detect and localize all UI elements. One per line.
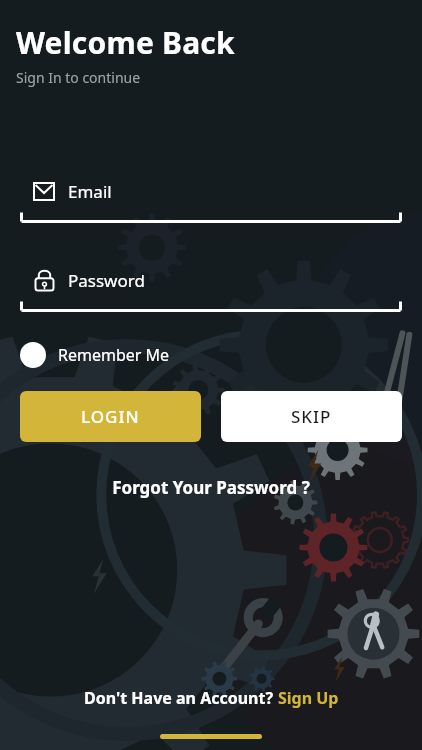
staticText: Remember Me [58, 344, 170, 366]
button[interactable]: Remember Me [20, 340, 178, 370]
staticText: Forgot Your Password ? [112, 476, 310, 499]
button[interactable]: Email field [20, 180, 402, 223]
staticText: Sign In to continue [16, 68, 141, 87]
button[interactable]: SKIP [221, 391, 402, 442]
staticText: Password [68, 269, 145, 292]
button[interactable]: Forgot Your Password ? [106, 470, 316, 505]
staticText: SKIP [291, 405, 332, 428]
button[interactable]: Sign Up [278, 687, 339, 709]
staticText: Don't Have an Account? [84, 687, 278, 709]
staticText: LOGIN [81, 405, 140, 428]
staticText: Welcome Back [16, 22, 235, 63]
staticText: Sign Up [278, 687, 339, 709]
button[interactable]: LOGIN [20, 391, 201, 442]
staticText: Email [68, 180, 112, 203]
button[interactable]: Password field [20, 269, 402, 312]
